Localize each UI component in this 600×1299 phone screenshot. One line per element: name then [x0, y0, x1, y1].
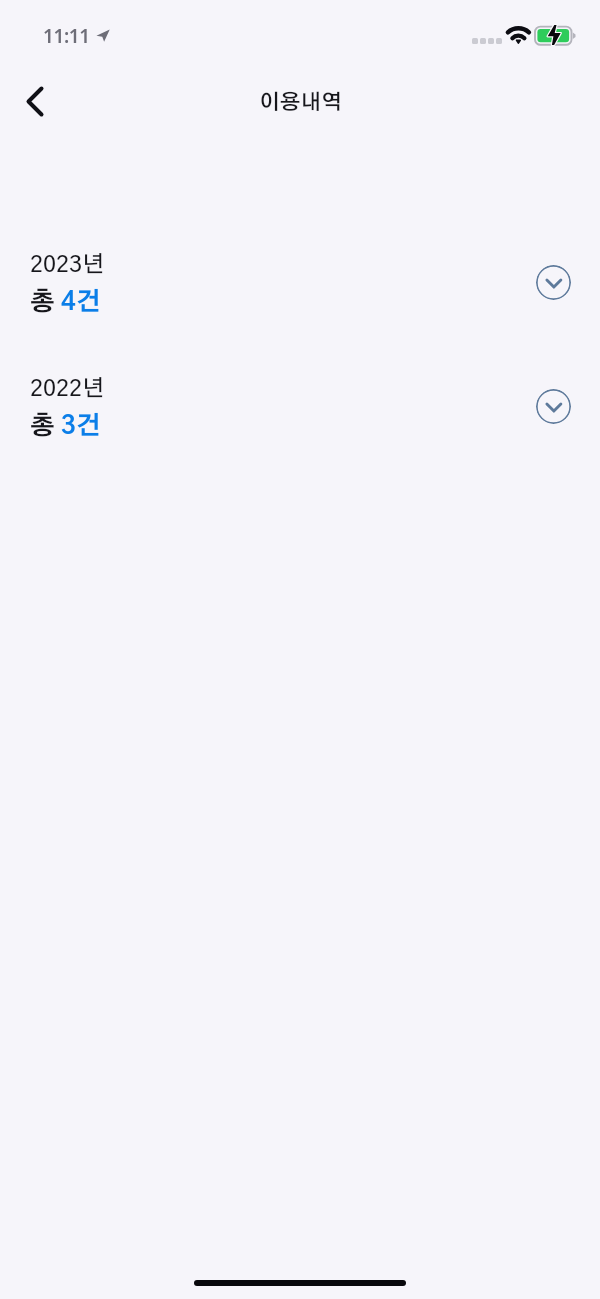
button[interactable]: 2022년 [0, 363, 600, 443]
staticText: 총 3건 [30, 414, 101, 439]
button[interactable]: 2023년 [0, 239, 600, 319]
button[interactable]: Back [8, 78, 62, 124]
staticText: 이용내역 [259, 92, 342, 113]
staticText: 11:11 [43, 23, 90, 49]
staticText: 2023년 [30, 254, 105, 277]
button[interactable]: Expand 2022년 [536, 389, 571, 424]
staticText: 2022년 [30, 378, 105, 401]
staticText: 총 4건 [30, 290, 101, 315]
button[interactable]: Expand 2023년 [536, 265, 571, 300]
